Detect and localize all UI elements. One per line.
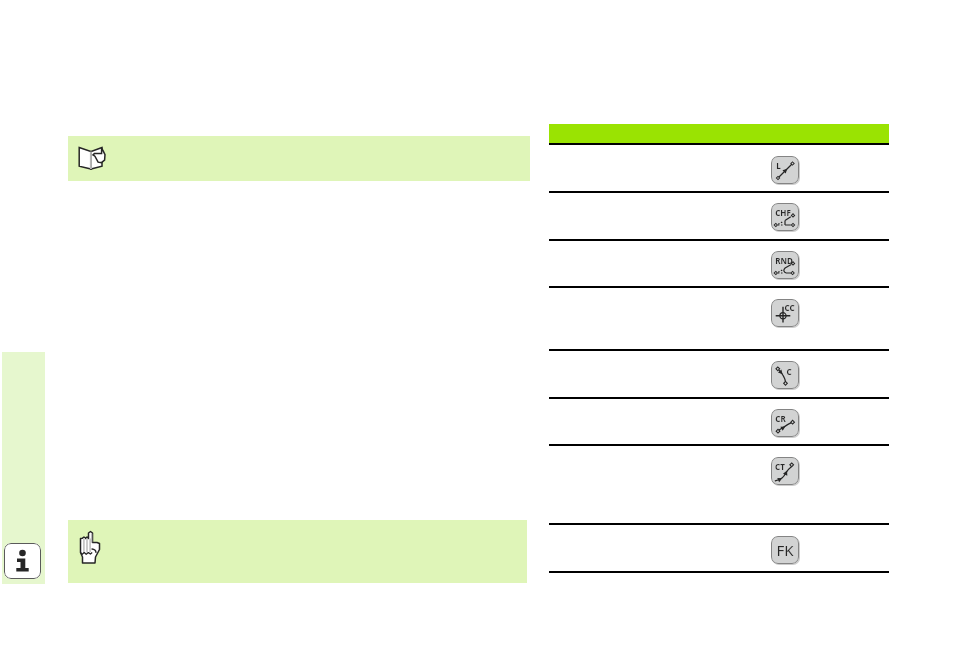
staticText: CT [775,461,785,472]
button[interactable]: RND [771,251,799,279]
staticText: FK [776,540,794,560]
button[interactable]: CHF [771,203,799,231]
button[interactable]: CT [771,457,799,485]
button[interactable]: L [771,156,799,184]
button[interactable]: CR [771,409,799,437]
staticText: C [786,366,792,377]
button[interactable]: FK [771,536,799,564]
button[interactable] [68,520,527,583]
staticText: CHF [775,207,791,218]
button[interactable] [2,352,45,584]
button[interactable]: CC [771,299,799,327]
staticText: CC [784,302,795,313]
button[interactable]: Information [4,543,41,579]
button[interactable]: C [771,361,799,389]
staticText: RND [775,255,793,266]
staticText: L [776,160,781,171]
button[interactable] [68,136,530,181]
staticText: CR [775,413,786,424]
